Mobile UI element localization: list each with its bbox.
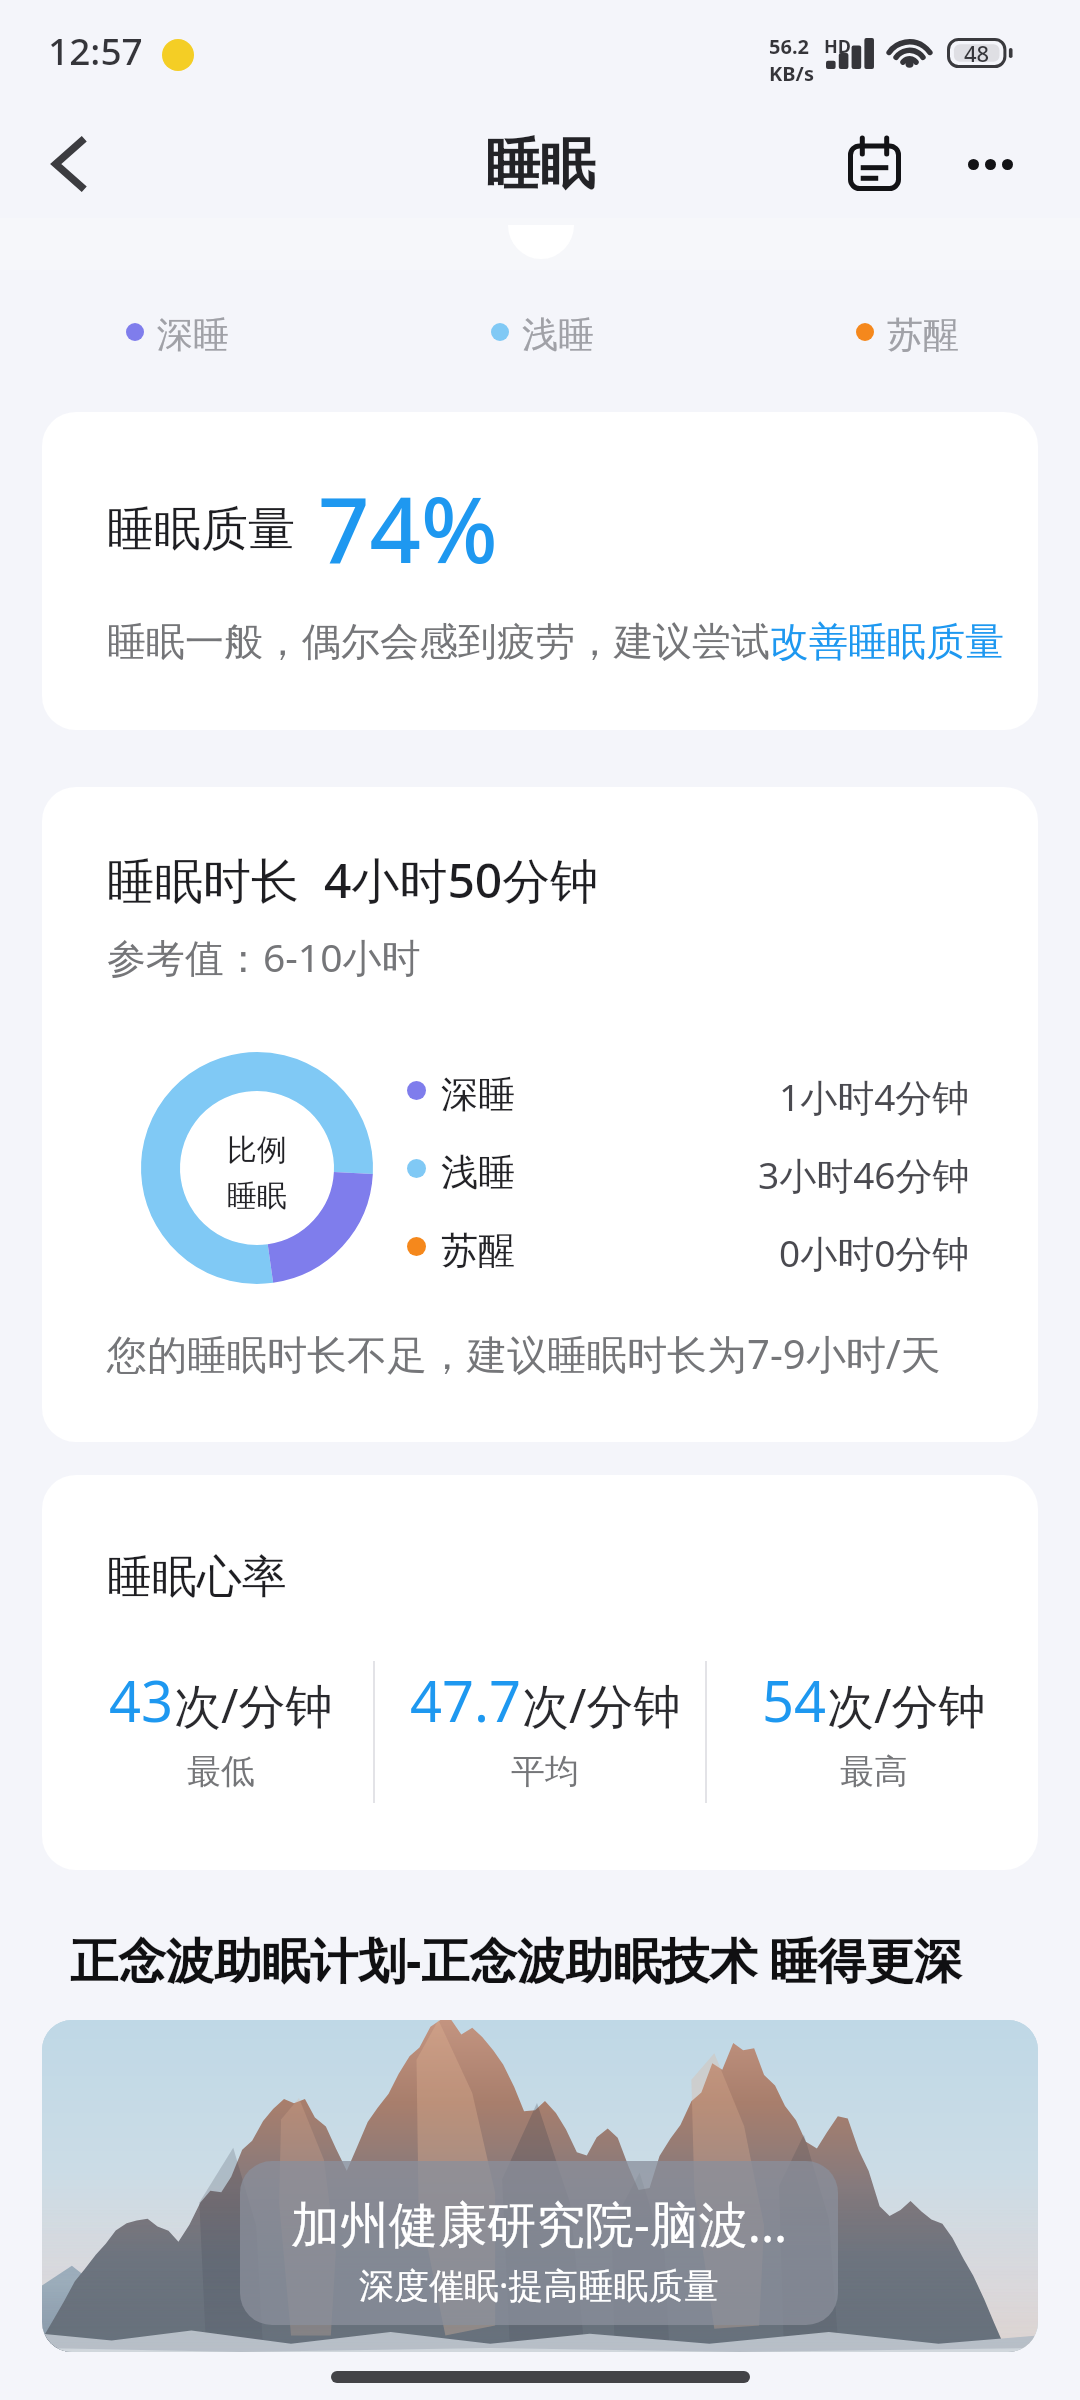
staticText: 次/分钟: [174, 1673, 333, 1737]
button[interactable]: 睡眠质量: [42, 412, 1038, 730]
button[interactable]: 苏醒: [397, 1220, 970, 1282]
staticText: 浅睡: [441, 1149, 515, 1196]
staticText: 54: [762, 1662, 827, 1738]
staticText: 74%: [318, 467, 498, 590]
staticText: 苏醒: [887, 312, 959, 357]
button[interactable]: 睡眠心率: [42, 1475, 1038, 1870]
staticText: 12:57: [48, 25, 143, 75]
button[interactable]: Back: [10, 110, 130, 218]
staticText: 您的睡眠时长不足，建议睡眠时长为7-9小时/天: [107, 1326, 941, 1381]
staticText: 睡眠质量: [107, 500, 295, 559]
staticText: KB/s: [769, 60, 814, 87]
staticText: 56.2: [769, 33, 809, 60]
staticText: 1小时4分钟: [779, 1071, 970, 1122]
staticText: 47.7: [410, 1662, 522, 1738]
staticText: 48: [964, 38, 990, 68]
button[interactable]: 深睡: [112, 306, 240, 358]
button[interactable]: 深睡: [397, 1064, 970, 1126]
button[interactable]: 浅睡: [397, 1142, 970, 1204]
button[interactable]: 改善睡眠质量: [770, 617, 1004, 666]
staticText: 3小时46分钟: [758, 1149, 970, 1200]
button[interactable]: More options: [930, 110, 1050, 218]
button[interactable]: 47.7: [379, 1475, 711, 1870]
button[interactable]: 54: [708, 1475, 1038, 1870]
staticText: 睡眠时长 4小时50分钟: [107, 847, 599, 913]
staticText: 改善睡眠质量: [770, 617, 1004, 666]
staticText: 次/分钟: [827, 1673, 986, 1737]
button[interactable]: Calendar: [808, 110, 940, 218]
staticText: 睡眠: [485, 130, 595, 199]
staticText: 次/分钟: [522, 1673, 681, 1737]
button[interactable]: 睡眠时长 4小时50分钟: [42, 787, 1038, 1442]
staticText: 平均: [511, 1750, 579, 1793]
staticText: 参考值：6-10小时: [107, 930, 421, 983]
staticText: 苏醒: [441, 1227, 515, 1274]
staticText: 睡眠心率: [107, 1549, 287, 1606]
staticText: 睡眠一般，偶尔会感到疲劳，建议尝试: [107, 617, 770, 666]
staticText: 深度催眠·提高睡眠质量: [359, 2261, 719, 2309]
staticText: 深睡: [157, 312, 229, 357]
staticText: 比例: [227, 1131, 287, 1169]
staticText: 0小时0分钟: [779, 1227, 970, 1278]
button[interactable]: 浅睡: [477, 306, 605, 358]
button[interactable]: 苏醒: [842, 306, 970, 358]
staticText: 最高: [840, 1750, 908, 1793]
staticText: 浅睡: [522, 312, 594, 357]
staticText: 43: [109, 1662, 174, 1738]
staticText: 睡眠: [227, 1177, 287, 1215]
staticText: 加州健康研究院-脑波...: [291, 2190, 788, 2257]
button[interactable]: 加州健康研究院-脑波...: [42, 2020, 1038, 2352]
staticText: 深睡: [441, 1071, 515, 1118]
button[interactable]: 43: [55, 1475, 387, 1870]
staticText: HD: [824, 34, 851, 59]
staticText: 正念波助眠计划-正念波助眠技术 睡得更深: [70, 1927, 962, 1993]
staticText: 最低: [187, 1750, 255, 1793]
